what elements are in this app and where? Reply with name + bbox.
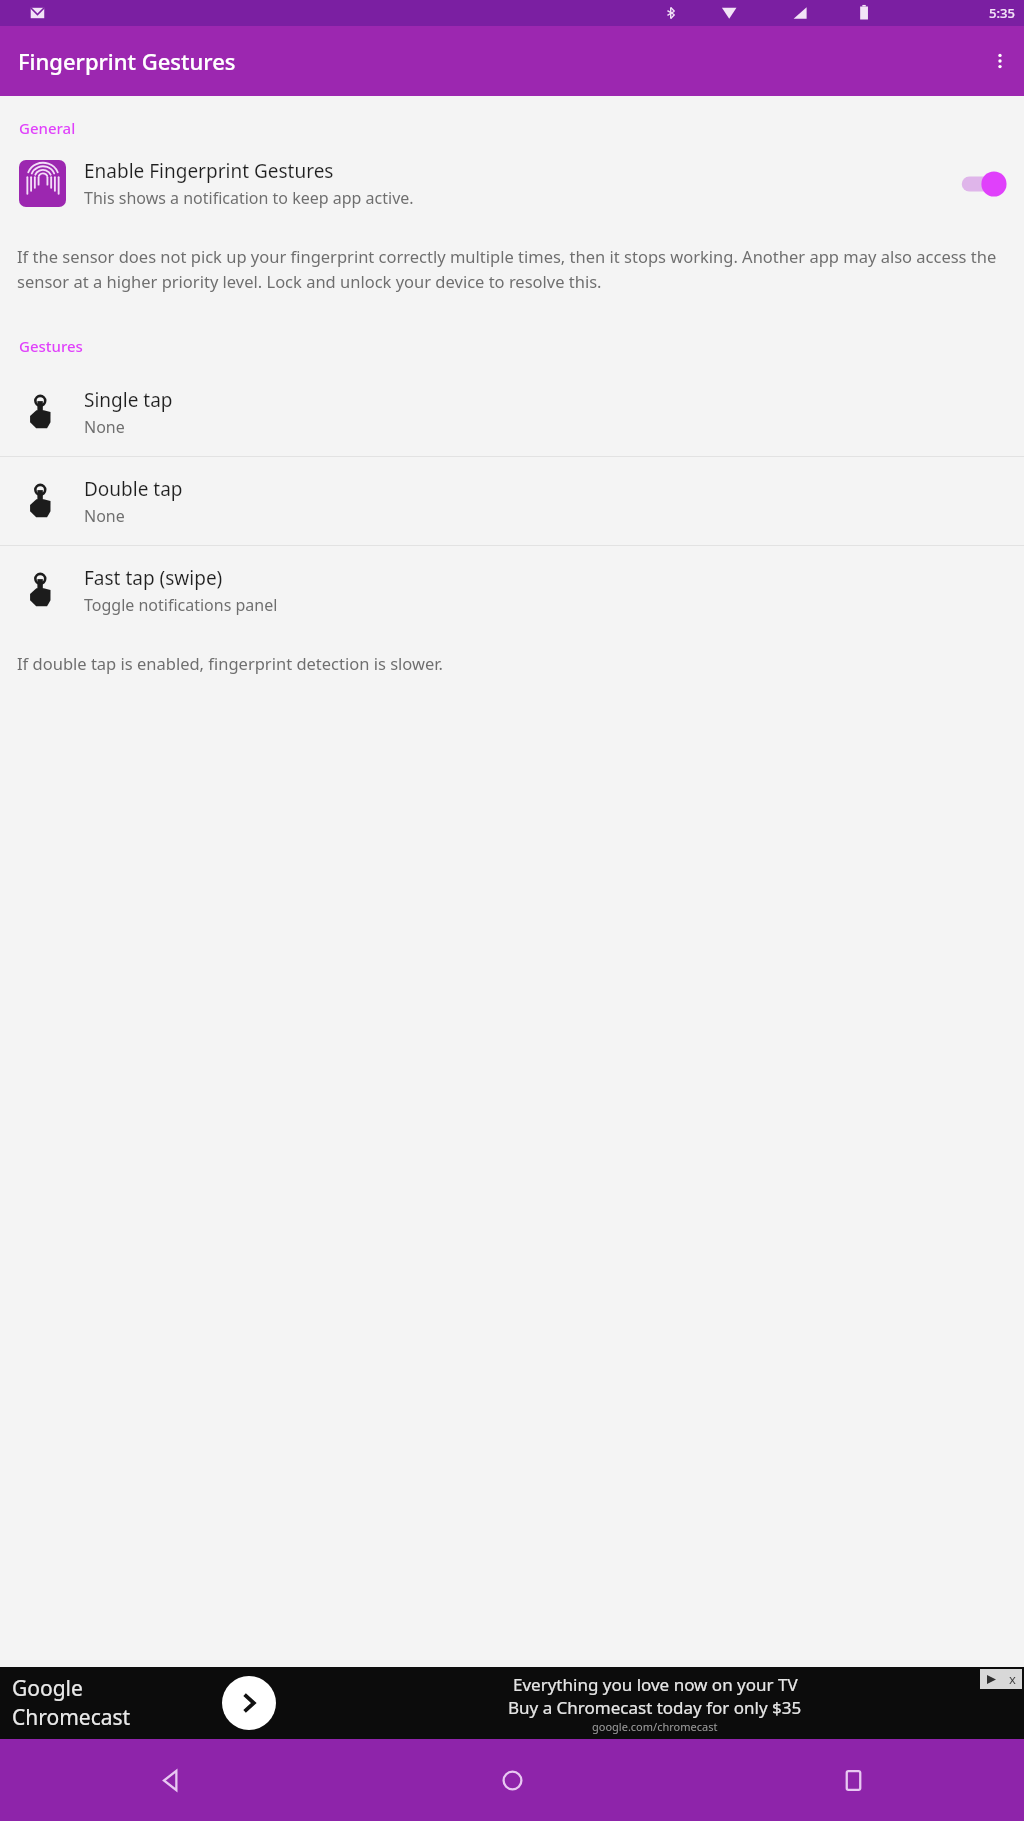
staticText: Chromecast — [12, 1703, 131, 1732]
staticText: This shows a notification to keep app ac… — [84, 187, 414, 209]
staticText: x — [1009, 1670, 1016, 1688]
staticText: If the sensor does not pick up your fing… — [17, 245, 1007, 292]
staticText: Enable Fingerprint Gestures — [84, 158, 334, 184]
staticText: Buy a Chromecast today for only $35 — [508, 1696, 802, 1719]
staticText: Double tap — [84, 476, 183, 502]
staticText: If double tap is enabled, fingerprint de… — [17, 652, 1007, 674]
staticText: None — [84, 416, 125, 438]
button[interactable]: Home — [342, 1739, 683, 1821]
button[interactable]: Single tap — [0, 368, 1024, 456]
button[interactable]: Back — [0, 1739, 342, 1821]
button[interactable]: Google — [0, 1667, 1024, 1739]
staticText: Single tap — [84, 387, 173, 413]
staticText: 5:35 — [989, 4, 1015, 22]
button[interactable]: Recents — [683, 1739, 1024, 1821]
staticText: Google — [12, 1674, 83, 1703]
staticText: google.com/chromecast — [592, 1719, 718, 1734]
staticText: Fast tap (swipe) — [84, 565, 223, 591]
button[interactable]: Enable Fingerprint Gestures — [0, 152, 1024, 215]
button[interactable]: More options — [976, 26, 1024, 96]
button[interactable]: Enable Fingerprint Gestures toggle — [959, 169, 1005, 199]
button[interactable]: Close ad — [1002, 1669, 1022, 1689]
button[interactable]: Fast tap (swipe) — [0, 546, 1024, 634]
staticText: General — [19, 118, 76, 138]
staticText: Fingerprint Gestures — [18, 46, 236, 76]
staticText: Toggle notifications panel — [84, 594, 278, 616]
button[interactable]: Double tap — [0, 457, 1024, 545]
staticText: Everything you love now on your TV — [513, 1673, 798, 1696]
staticText: None — [84, 505, 125, 527]
staticText: Gestures — [19, 336, 83, 356]
